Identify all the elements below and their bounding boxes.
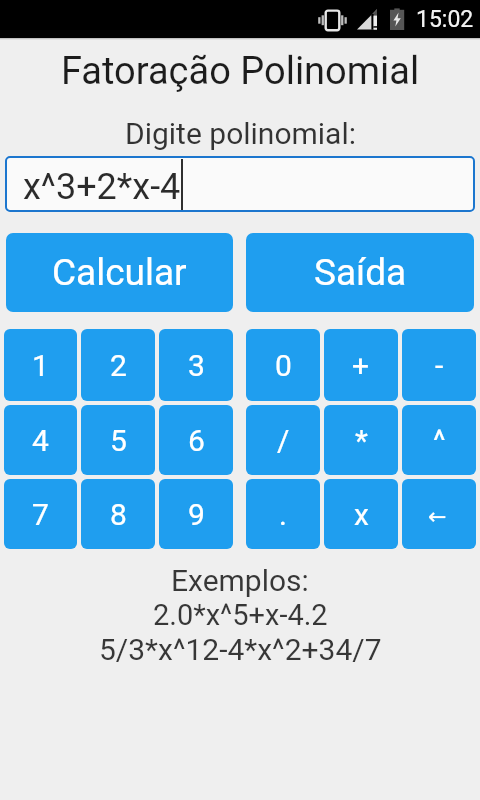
staticText: ← xyxy=(428,504,447,530)
button[interactable]: 3 xyxy=(159,329,233,401)
staticText: 1 xyxy=(32,348,49,383)
staticText: 6 xyxy=(188,423,205,458)
staticText: Exemplos: xyxy=(171,563,309,598)
staticText: 5/3*x^12-4*x^2+34/7 xyxy=(99,632,382,667)
staticText: 0 xyxy=(275,348,292,383)
staticText: . xyxy=(279,497,287,532)
staticText: x^3+2*x-4 xyxy=(23,166,181,208)
button[interactable]: 9 xyxy=(159,479,233,549)
button[interactable]: 8 xyxy=(81,479,155,549)
staticText: 4 xyxy=(32,423,49,458)
staticText: Digite polinomial: xyxy=(125,116,356,151)
staticText: 3 xyxy=(188,348,205,383)
staticText: 2 xyxy=(110,348,127,383)
staticText: 9 xyxy=(188,497,205,532)
staticText: * xyxy=(355,423,368,458)
button[interactable]: 1 xyxy=(4,329,77,401)
staticText: + xyxy=(352,348,370,383)
button[interactable]: ^ xyxy=(402,405,476,475)
button[interactable]: 5 xyxy=(81,405,155,475)
button[interactable]: / xyxy=(246,405,320,475)
button[interactable]: x^3+2*x-4 xyxy=(5,156,475,212)
staticText: 8 xyxy=(110,497,127,532)
staticText: Fatoração Polinomial xyxy=(61,49,420,94)
button[interactable]: * xyxy=(324,405,398,475)
staticText: 2.0*x^5+x-4.2 xyxy=(153,598,328,632)
staticText: x xyxy=(354,497,369,532)
button[interactable]: + xyxy=(324,329,398,401)
staticText: - xyxy=(435,348,444,383)
staticText: ^ xyxy=(433,423,446,458)
button[interactable]: 4 xyxy=(4,405,77,475)
staticText: 15:02 xyxy=(416,6,474,33)
staticText: Saída xyxy=(314,251,407,294)
button[interactable]: . xyxy=(246,479,320,549)
button[interactable]: Saída xyxy=(246,233,474,312)
button[interactable]: 6 xyxy=(159,405,233,475)
button[interactable]: 7 xyxy=(4,479,77,549)
button[interactable]: 2 xyxy=(81,329,155,401)
button[interactable]: x xyxy=(324,479,398,549)
button[interactable]: Calcular xyxy=(6,233,233,312)
button[interactable]: 0 xyxy=(246,329,320,401)
staticText: / xyxy=(277,423,290,458)
staticText: 7 xyxy=(32,497,49,532)
button[interactable]: - xyxy=(402,329,476,401)
staticText: Calcular xyxy=(52,251,187,294)
button[interactable]: ← xyxy=(402,479,476,549)
staticText: 5 xyxy=(110,423,127,458)
